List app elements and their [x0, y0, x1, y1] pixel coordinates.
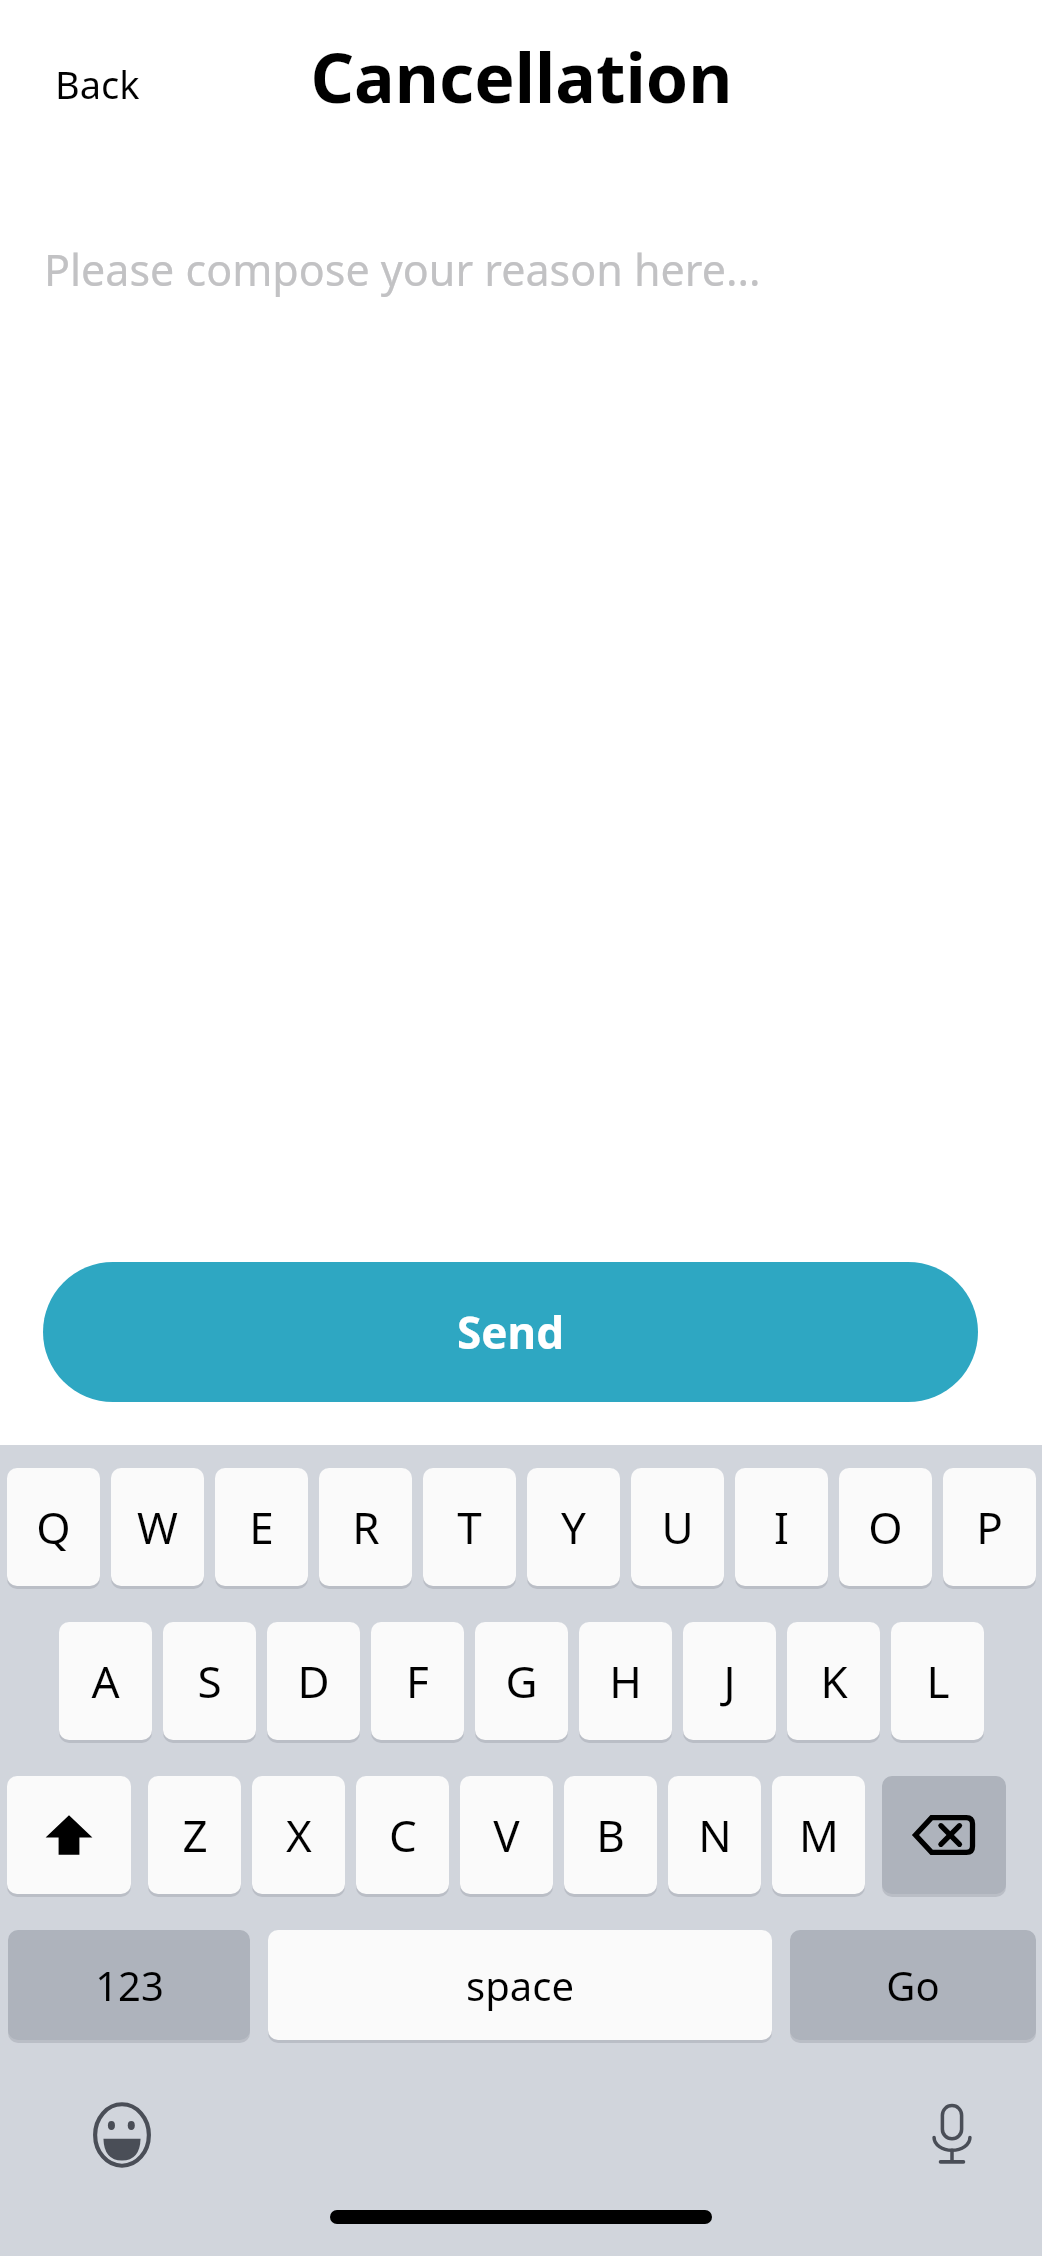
button[interactable]: Y [527, 1468, 620, 1586]
staticText: D [297, 1651, 330, 1711]
staticText: Send [457, 1302, 564, 1362]
staticText: V [493, 1805, 520, 1865]
staticText: Go [886, 1958, 940, 2012]
staticText: Z [182, 1805, 208, 1865]
staticText: J [723, 1651, 736, 1711]
button[interactable]: M [772, 1776, 865, 1894]
button[interactable]: S [163, 1622, 256, 1740]
button[interactable]: B [564, 1776, 657, 1894]
staticText: Back [55, 58, 140, 110]
button[interactable]: R [319, 1468, 412, 1586]
staticText: U [661, 1497, 694, 1557]
button[interactable]: G [475, 1622, 568, 1740]
staticText: space [466, 1958, 574, 2012]
staticText: 123 [95, 1958, 164, 2012]
button[interactable]: P [943, 1468, 1036, 1586]
staticText: A [91, 1651, 120, 1711]
button[interactable]: Voice input [902, 2085, 1002, 2185]
button[interactable]: Back [55, 58, 140, 110]
staticText: K [820, 1651, 848, 1711]
staticText: L [926, 1651, 950, 1711]
staticText: G [505, 1651, 538, 1711]
button[interactable]: U [631, 1468, 724, 1586]
button[interactable]: J [683, 1622, 776, 1740]
button[interactable]: Send [43, 1262, 978, 1402]
staticText: Cancellation [310, 30, 733, 123]
button[interactable]: L [891, 1622, 984, 1740]
button[interactable]: Q [7, 1468, 100, 1586]
staticText: C [389, 1805, 417, 1865]
staticText: M [799, 1805, 839, 1865]
staticText: S [197, 1651, 222, 1711]
button[interactable]: N [668, 1776, 761, 1894]
button[interactable]: Shift [7, 1776, 131, 1894]
button[interactable]: C [356, 1776, 449, 1894]
staticText: T [457, 1497, 482, 1557]
staticText: Q [36, 1497, 71, 1557]
button[interactable]: E [215, 1468, 308, 1586]
button[interactable]: I [735, 1468, 828, 1586]
button[interactable]: Emoji keyboard [72, 2085, 172, 2185]
staticText: Please compose your reason here... [44, 240, 761, 299]
button[interactable]: O [839, 1468, 932, 1586]
staticText: N [698, 1805, 732, 1865]
staticText: H [609, 1651, 642, 1711]
button[interactable]: T [423, 1468, 516, 1586]
button[interactable]: A [59, 1622, 152, 1740]
staticText: B [596, 1805, 625, 1865]
button[interactable]: V [460, 1776, 553, 1894]
staticText: F [406, 1651, 429, 1711]
button[interactable]: F [371, 1622, 464, 1740]
button[interactable]: K [787, 1622, 880, 1740]
staticText: E [249, 1497, 274, 1557]
button[interactable]: Z [148, 1776, 241, 1894]
staticText: Y [561, 1497, 586, 1557]
button[interactable]: H [579, 1622, 672, 1740]
staticText: X [286, 1805, 312, 1865]
button[interactable]: Backspace [882, 1776, 1006, 1894]
staticText: P [976, 1497, 1003, 1557]
button[interactable]: Please compose your reason here... [44, 240, 998, 1200]
button[interactable]: space [268, 1930, 772, 2040]
button[interactable]: W [111, 1468, 204, 1586]
button[interactable]: Go [790, 1930, 1036, 2040]
staticText: O [868, 1497, 903, 1557]
button[interactable]: D [267, 1622, 360, 1740]
button[interactable]: 123 [8, 1930, 250, 2040]
staticText: I [774, 1497, 789, 1557]
staticText: W [137, 1497, 178, 1557]
staticText: R [352, 1497, 380, 1557]
button[interactable]: X [252, 1776, 345, 1894]
